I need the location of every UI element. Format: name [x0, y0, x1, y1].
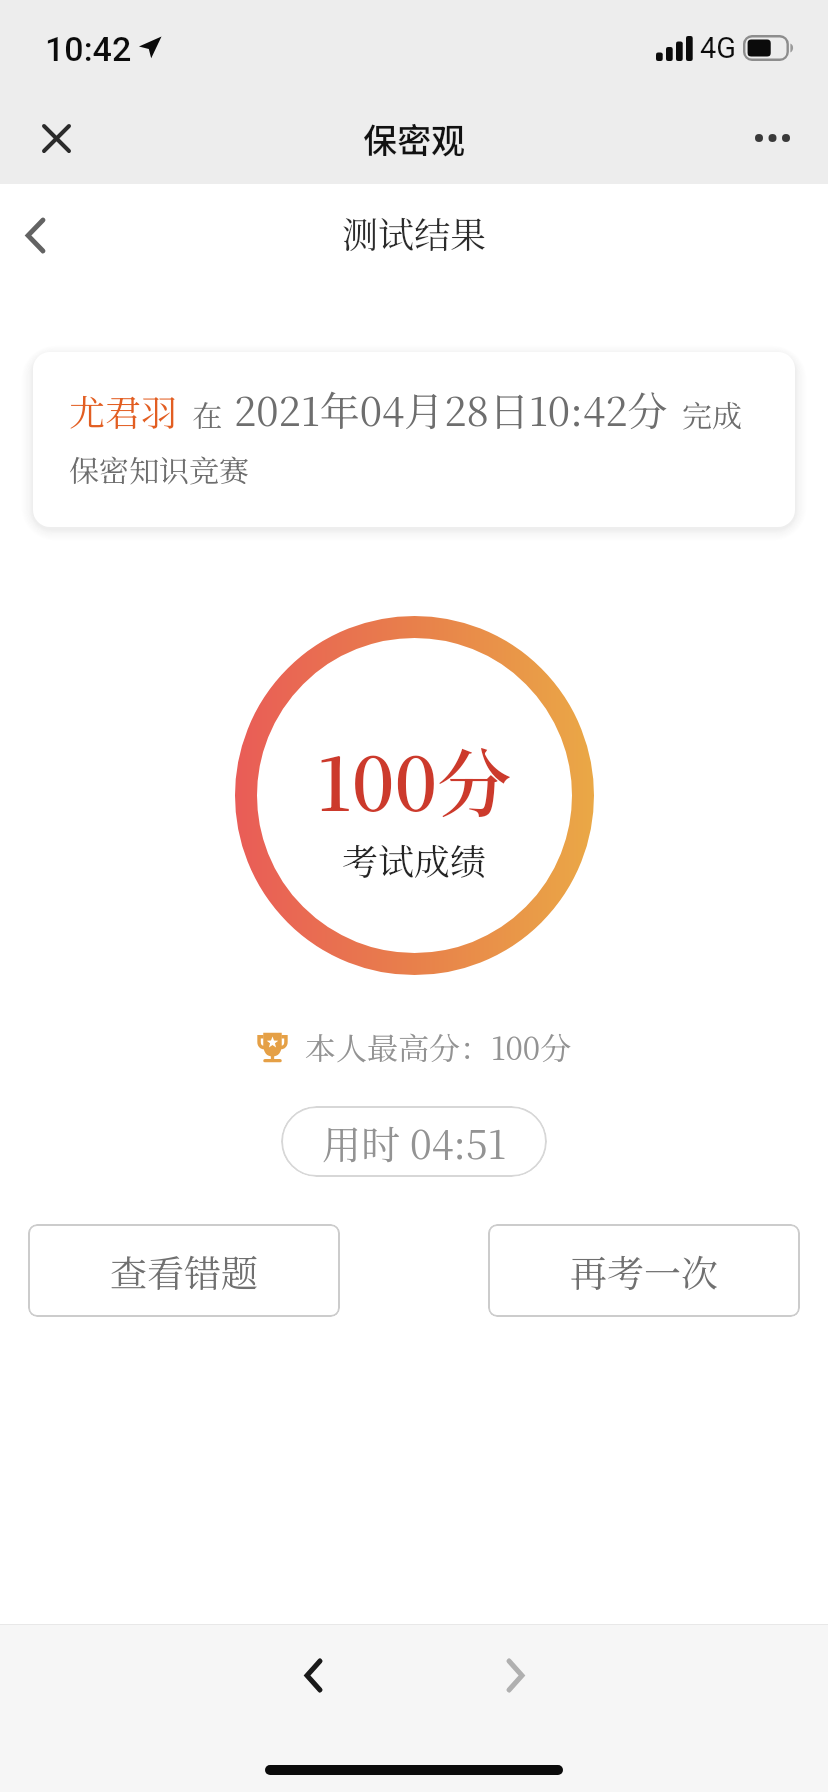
staticText: 保密知识竞赛 — [69, 447, 249, 490]
staticText: 完成 — [682, 392, 742, 435]
staticText: 2021年04月28日10:42分 — [234, 380, 668, 437]
staticText: 再考一次 — [570, 1244, 718, 1297]
staticText: 在 — [192, 392, 222, 435]
button[interactable]: Close — [20, 102, 92, 174]
staticText: 10:42 — [45, 29, 132, 69]
button[interactable]: 查看错题 — [28, 1224, 340, 1317]
staticText: 保密观 — [363, 114, 465, 163]
button[interactable]: Forward — [474, 1634, 556, 1716]
button[interactable]: Back — [272, 1634, 354, 1716]
button[interactable]: More options — [736, 102, 808, 174]
staticText: 尤君羽 — [69, 385, 178, 437]
button[interactable]: 用时 04:51 — [281, 1106, 547, 1177]
staticText: 考试成绩 — [342, 834, 487, 886]
staticText: 测试结果 — [342, 207, 487, 259]
staticText: 查看错题 — [110, 1244, 258, 1297]
button[interactable]: 再考一次 — [488, 1224, 800, 1317]
staticText: 4G — [700, 31, 737, 65]
button[interactable]: 尤君羽 — [33, 352, 795, 527]
staticText: 100分 — [317, 726, 512, 832]
button[interactable]: Back — [1, 201, 69, 269]
staticText: 本人最高分：100分 — [305, 1024, 572, 1069]
staticText: 用时 04:51 — [322, 1114, 507, 1170]
